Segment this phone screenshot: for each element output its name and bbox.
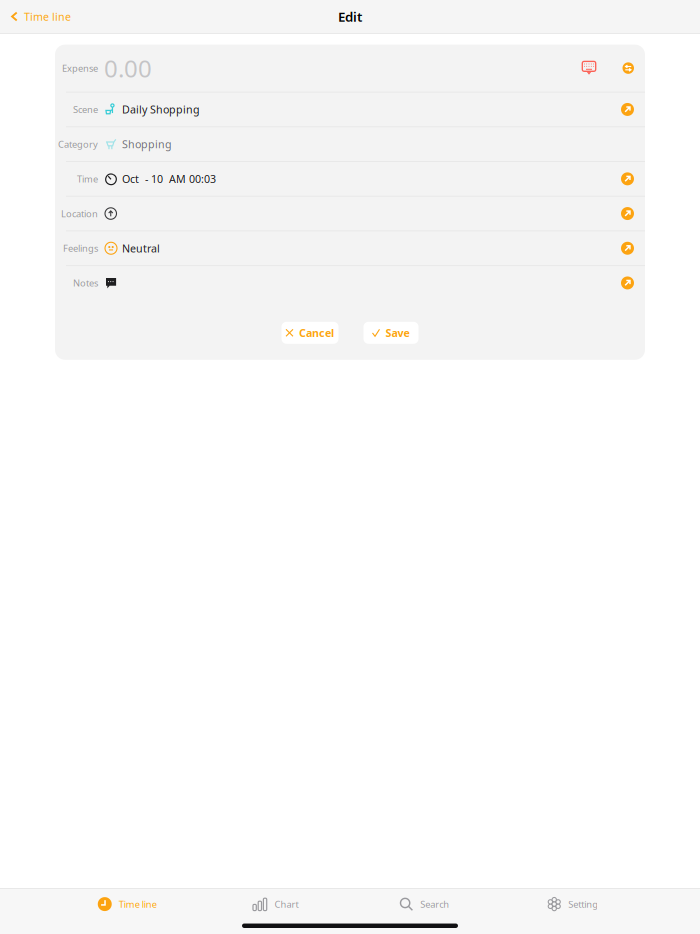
- button[interactable]: Search: [350, 889, 498, 920]
- staticText: Time line: [24, 9, 71, 24]
- button[interactable]: Show keyboard: [575, 55, 602, 82]
- staticText: Scene: [73, 103, 98, 116]
- staticText: Edit: [338, 8, 362, 25]
- button[interactable]: Save: [363, 322, 418, 344]
- staticText: Neutral: [122, 241, 160, 255]
- staticText: Time line: [119, 898, 157, 910]
- button[interactable]: Chart: [201, 889, 350, 920]
- button[interactable]: Time line: [0, 0, 81, 33]
- button[interactable]: Category: [55, 127, 645, 161]
- staticText: Expense: [62, 62, 98, 74]
- staticText: Setting: [568, 898, 598, 910]
- staticText: Time: [77, 173, 98, 185]
- staticText: Feelings: [63, 242, 98, 254]
- staticText: Notes: [73, 277, 98, 289]
- button[interactable]: Scene: [55, 93, 645, 126]
- staticText: Oct - 10 AM 00:03: [122, 172, 216, 186]
- button[interactable]: Time: [55, 162, 645, 196]
- button[interactable]: Notes: [55, 266, 645, 300]
- staticText: Category: [58, 138, 98, 150]
- staticText: Save: [385, 326, 409, 340]
- button[interactable]: Switch between expense and income: [616, 55, 640, 81]
- button[interactable]: Cancel: [281, 322, 338, 344]
- button[interactable]: Feelings: [55, 231, 645, 265]
- button[interactable]: Time line: [53, 889, 201, 920]
- staticText: Location: [61, 207, 98, 220]
- button[interactable]: Location: [55, 197, 645, 230]
- staticText: Cancel: [299, 326, 334, 340]
- staticText: Search: [420, 898, 449, 910]
- staticText: Chart: [274, 898, 298, 910]
- button[interactable]: Setting: [498, 889, 647, 920]
- staticText: Daily Shopping: [122, 102, 200, 117]
- staticText: Shopping: [122, 137, 172, 151]
- staticText: 0.00: [104, 52, 152, 84]
